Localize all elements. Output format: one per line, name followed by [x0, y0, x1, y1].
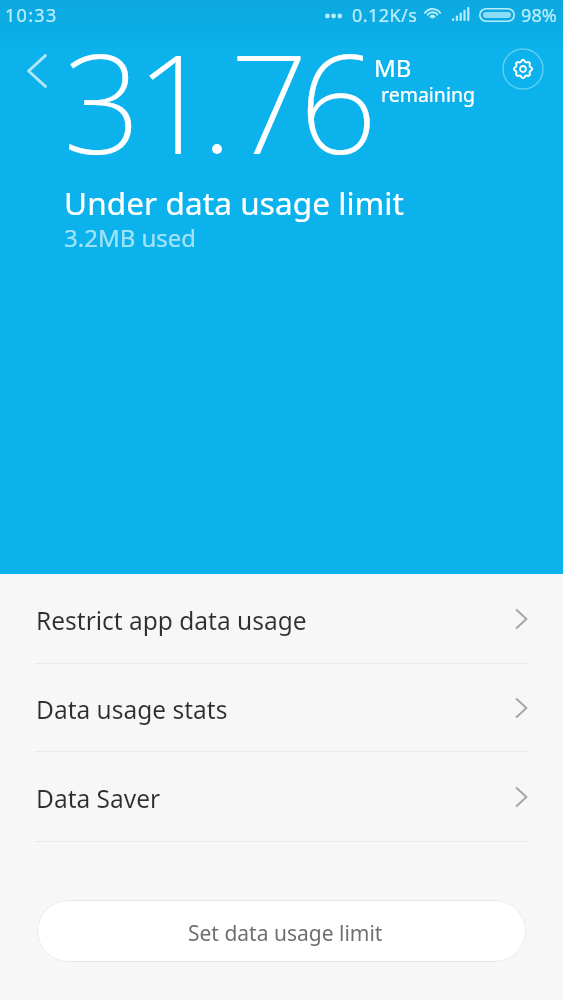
- button[interactable]: Data usage stats: [0, 664, 563, 751]
- staticText: 3: [63, 8, 142, 195]
- staticText: MB: [374, 51, 412, 84]
- staticText: 3.2MB used: [64, 221, 197, 254]
- staticText: remaining: [381, 81, 475, 108]
- staticText: 1: [136, 8, 215, 195]
- button[interactable]: Back: [13, 49, 61, 93]
- button[interactable]: Restrict app data usage: [0, 574, 563, 663]
- staticText: 7: [230, 8, 309, 195]
- button[interactable]: Data Saver: [0, 752, 563, 841]
- button[interactable]: Settings: [495, 41, 551, 97]
- staticText: 10:33: [5, 3, 58, 28]
- staticText: Data usage stats: [36, 693, 228, 726]
- staticText: 0.12K/s: [352, 3, 418, 28]
- button[interactable]: Set data usage limit: [37, 900, 526, 962]
- staticText: Data Saver: [36, 782, 161, 815]
- staticText: 98%: [521, 3, 557, 28]
- staticText: Under data usage limit: [64, 181, 405, 224]
- staticText: 6: [299, 8, 378, 195]
- staticText: Restrict app data usage: [36, 604, 307, 637]
- staticText: Set data usage limit: [188, 919, 383, 948]
